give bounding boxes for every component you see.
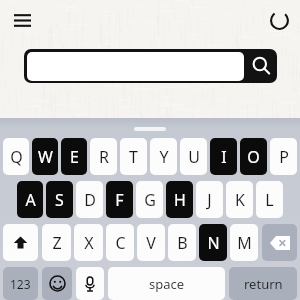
staticText: A: [25, 189, 36, 211]
button[interactable]: 123: [3, 267, 38, 300]
staticText: E: [70, 146, 79, 168]
staticText: B: [177, 232, 188, 254]
button[interactable]: Y: [150, 138, 177, 175]
button[interactable]: B: [168, 224, 196, 261]
staticText: U: [188, 146, 200, 168]
button[interactable]: W: [32, 138, 58, 175]
button[interactable]: S: [46, 181, 73, 218]
button[interactable]: N: [199, 224, 227, 261]
button[interactable]: K: [226, 181, 253, 218]
staticText: I: [221, 146, 227, 168]
button[interactable]: F: [106, 181, 133, 218]
button[interactable]: Shift: [3, 224, 38, 261]
staticText: return: [244, 275, 283, 293]
button[interactable]: Refresh: [265, 6, 293, 34]
button[interactable]: Emoji: [42, 267, 72, 300]
staticText: T: [129, 146, 138, 168]
button[interactable]: Voice input: [76, 267, 104, 300]
button[interactable]: X: [74, 224, 103, 261]
staticText: D: [84, 189, 96, 211]
button[interactable]: I: [210, 138, 237, 175]
button[interactable]: M: [230, 224, 258, 261]
button[interactable]: G: [136, 181, 163, 218]
button[interactable]: Menu: [9, 8, 35, 32]
staticText: V: [146, 232, 156, 254]
staticText: 123: [10, 276, 31, 292]
staticText: M: [237, 232, 252, 254]
button[interactable]: return: [229, 267, 297, 300]
staticText: P: [279, 146, 289, 168]
button[interactable]: R: [90, 138, 117, 175]
staticText: R: [99, 146, 109, 168]
button[interactable]: E: [61, 138, 87, 175]
button[interactable]: Q: [3, 138, 29, 175]
button[interactable]: Backspace: [262, 224, 297, 261]
button[interactable]: J: [196, 181, 223, 218]
staticText: F: [115, 189, 124, 211]
button[interactable]: T: [120, 138, 147, 175]
staticText: L: [265, 189, 274, 211]
staticText: C: [115, 232, 126, 254]
button[interactable]: L: [256, 181, 283, 218]
button[interactable]: V: [137, 224, 165, 261]
staticText: J: [207, 189, 212, 211]
staticText: G: [144, 189, 156, 211]
button[interactable]: O: [240, 138, 267, 175]
staticText: Y: [159, 146, 169, 168]
staticText: Q: [10, 146, 23, 168]
button[interactable]: D: [76, 181, 103, 218]
staticText: N: [207, 232, 220, 254]
staticText: space: [149, 275, 185, 293]
button[interactable]: space: [108, 267, 225, 300]
button[interactable]: C: [106, 224, 134, 261]
button[interactable]: U: [180, 138, 207, 175]
button[interactable]: [24, 49, 277, 83]
button[interactable]: A: [17, 181, 43, 218]
staticText: W: [38, 146, 53, 168]
button[interactable]: H: [166, 181, 193, 218]
staticText: S: [55, 189, 64, 211]
staticText: H: [174, 189, 186, 211]
staticText: K: [235, 189, 245, 211]
staticText: X: [84, 232, 94, 254]
button[interactable]: Z: [42, 224, 71, 261]
staticText: Z: [52, 232, 62, 254]
button[interactable]: P: [270, 138, 297, 175]
staticText: O: [247, 146, 260, 168]
